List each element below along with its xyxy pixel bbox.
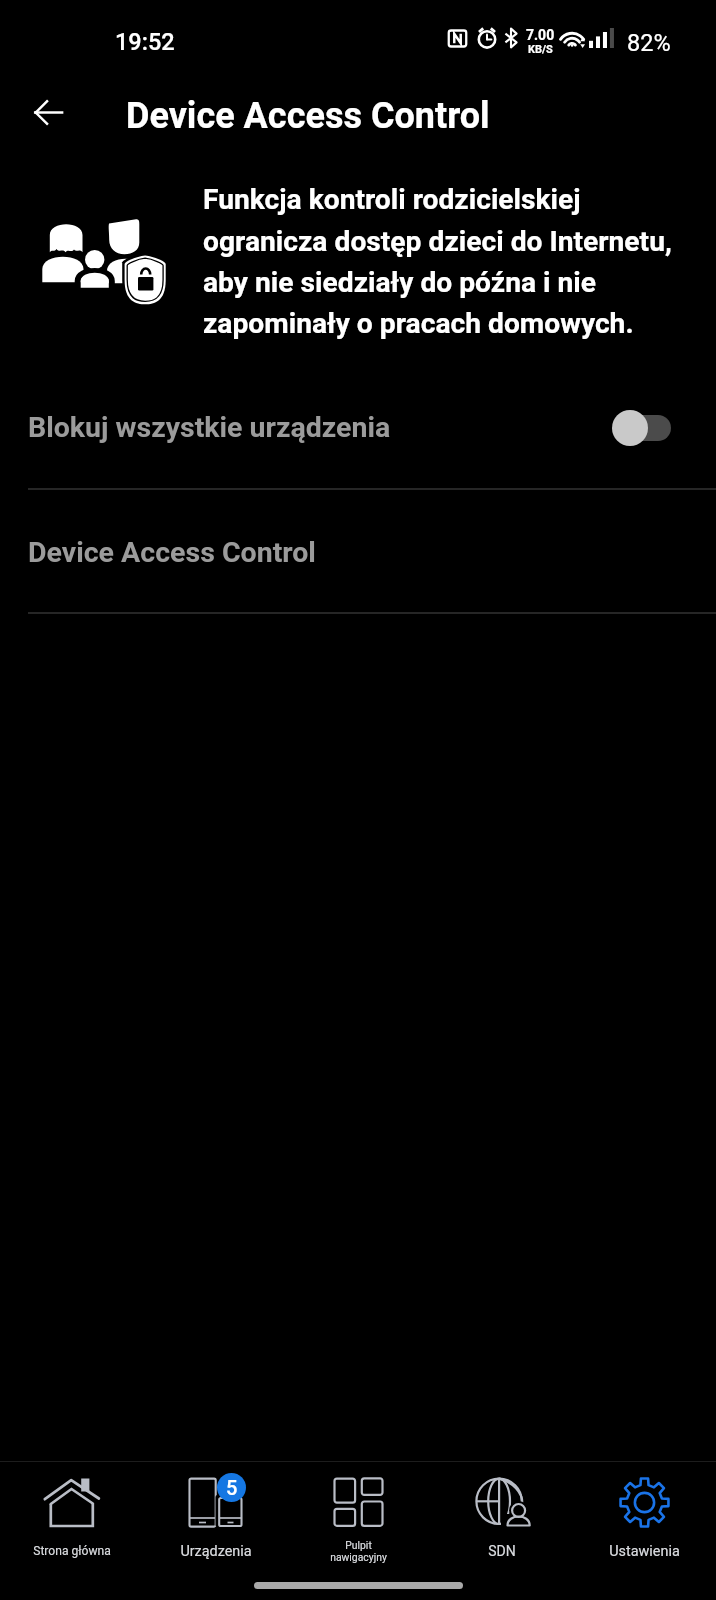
- staticText: SDN: [488, 1543, 516, 1559]
- button[interactable]: Back: [20, 84, 77, 141]
- button[interactable]: Ustawienia: [573, 1462, 716, 1560]
- staticText: Device Access Control: [28, 536, 316, 569]
- staticText: Ustawienia: [609, 1543, 680, 1560]
- button[interactable]: Device Access Control: [0, 491, 716, 614]
- staticText: Blokuj wszystkie urządzenia: [28, 411, 391, 444]
- staticText: Device Access Control: [126, 95, 490, 137]
- button[interactable]: Strona główna: [0, 1462, 144, 1558]
- staticText: 82%: [627, 29, 671, 57]
- staticText: Funkcja kontroli rodzicielskiej ogranicz…: [203, 183, 716, 340]
- staticText: Pulpit nawigacyjny: [330, 1539, 387, 1564]
- button[interactable]: SDN: [430, 1462, 573, 1559]
- button[interactable]: Blokuj wszystkie urządzenia: [0, 374, 716, 481]
- staticText: Strona główna: [33, 1544, 111, 1558]
- staticText: 5: [226, 1476, 238, 1499]
- button[interactable]: 5: [144, 1462, 287, 1560]
- staticText: KB/S: [528, 43, 553, 56]
- staticText: 19:52: [115, 28, 175, 56]
- staticText: Urządzenia: [180, 1543, 252, 1560]
- button[interactable]: Pulpit nawigacyjny: [287, 1462, 430, 1564]
- staticText: 7.00: [526, 27, 555, 43]
